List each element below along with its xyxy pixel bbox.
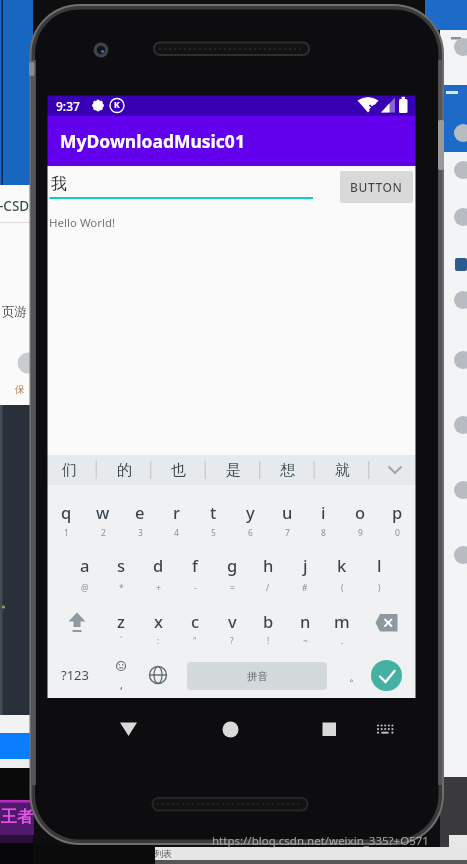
button[interactable]: ?123 <box>49 655 101 695</box>
button[interactable]: 想 <box>262 455 312 485</box>
button[interactable]: 的 <box>99 455 149 485</box>
staticText: m <box>334 610 350 632</box>
staticText: 9:37 <box>56 98 80 114</box>
button[interactable] <box>145 658 171 692</box>
button[interactable]: 们 <box>44 455 94 485</box>
staticText: t <box>210 501 217 523</box>
staticText: 6 <box>248 527 253 539</box>
button[interactable]: 就 <box>317 455 367 485</box>
staticText: 我 <box>51 174 67 194</box>
staticText: o <box>355 501 366 523</box>
staticText: z <box>117 610 125 632</box>
button[interactable]: d <box>140 548 176 582</box>
staticText: e <box>135 501 145 523</box>
staticText: / <box>266 582 270 594</box>
staticText: # <box>302 582 308 594</box>
staticText: Hello World! <box>49 215 116 231</box>
staticText: 列表 <box>154 848 172 859</box>
staticText: 9 <box>358 527 363 539</box>
staticText: i <box>321 501 326 523</box>
button[interactable]: f <box>177 548 213 582</box>
button[interactable]: s <box>103 548 139 582</box>
button[interactable] <box>214 712 248 742</box>
button[interactable]: BUTTON <box>340 171 413 203</box>
button[interactable]: h <box>250 548 286 582</box>
button[interactable] <box>370 600 410 644</box>
button[interactable]: a <box>67 548 103 582</box>
staticText: : <box>157 635 160 647</box>
button[interactable]: w <box>85 495 121 529</box>
staticText: . <box>341 635 344 647</box>
staticText: f <box>192 554 198 576</box>
staticText: 王者 <box>1 807 33 827</box>
staticText: 保 <box>15 383 25 396</box>
button[interactable]: y <box>232 495 268 529</box>
button[interactable] <box>371 660 402 691</box>
staticText: ( <box>341 582 344 594</box>
staticText: 3 <box>138 527 143 539</box>
button[interactable] <box>60 600 96 644</box>
staticText: d <box>153 554 164 576</box>
button[interactable]: c <box>177 604 213 638</box>
staticText: K <box>114 99 120 111</box>
button[interactable] <box>370 714 398 740</box>
staticText: v <box>228 610 237 632</box>
staticText: MyDownloadMusic01 <box>60 129 245 153</box>
staticText: n <box>300 610 311 632</box>
staticText: q <box>61 501 72 523</box>
staticText: ! <box>267 635 270 647</box>
staticText: a <box>80 554 90 576</box>
button[interactable]: t <box>195 495 231 529</box>
button[interactable]: x <box>140 604 176 638</box>
button[interactable]: l <box>361 548 397 582</box>
button[interactable]: m <box>324 604 360 638</box>
button[interactable]: u <box>269 495 305 529</box>
staticText: l <box>377 554 382 576</box>
staticText: = <box>230 582 235 594</box>
button[interactable]: q <box>48 495 84 529</box>
staticText: h <box>263 554 274 576</box>
staticText: ?123 <box>61 666 89 684</box>
button[interactable]: r <box>158 495 194 529</box>
button[interactable]: g <box>214 548 250 582</box>
staticText: 1 <box>64 527 69 539</box>
button[interactable]: j <box>287 548 323 582</box>
staticText: y <box>246 501 255 523</box>
staticText: BUTTON <box>350 179 403 195</box>
staticText: u <box>282 501 293 523</box>
button[interactable]: p <box>379 495 415 529</box>
staticText: 2 <box>101 527 106 539</box>
button[interactable]: k <box>324 548 360 582</box>
staticText: , <box>120 677 123 691</box>
button[interactable]: z <box>103 604 139 638</box>
button[interactable] <box>312 712 346 742</box>
button[interactable]: 是 <box>208 455 258 485</box>
staticText: 们 <box>62 461 77 480</box>
button[interactable]: e <box>122 495 158 529</box>
button[interactable]: i <box>305 495 341 529</box>
button[interactable]: 。 <box>344 667 366 687</box>
button[interactable] <box>48 168 314 200</box>
staticText: c <box>191 610 200 632</box>
staticText: ` <box>120 635 123 647</box>
staticText: p <box>392 501 403 523</box>
staticText: 4 <box>174 527 179 539</box>
staticText: - <box>194 582 197 594</box>
button[interactable]: 也 <box>153 455 203 485</box>
staticText: 就 <box>335 461 350 480</box>
button[interactable] <box>112 712 146 742</box>
staticText: ~ <box>303 635 308 647</box>
staticText: 页游 <box>2 304 27 320</box>
staticText: 也 <box>171 461 186 480</box>
staticText: x <box>154 610 163 632</box>
button[interactable]: b <box>250 604 286 638</box>
staticText: @ <box>81 582 89 594</box>
button[interactable]: 拼音 <box>187 662 327 690</box>
button[interactable]: o <box>342 495 378 529</box>
button[interactable]: v <box>214 604 250 638</box>
button[interactable]: n <box>287 604 323 638</box>
staticText: + <box>156 582 161 594</box>
staticText: 5 <box>211 527 216 539</box>
staticText: ) <box>378 582 381 594</box>
staticText: " <box>193 635 197 647</box>
